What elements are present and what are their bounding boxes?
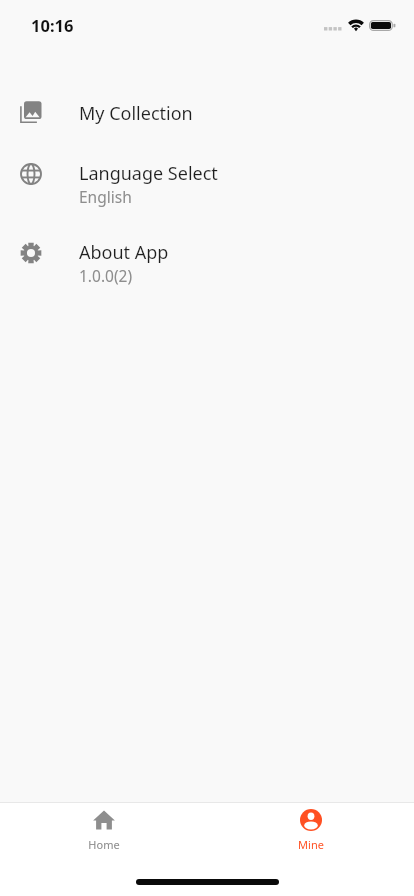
button[interactable]: About App — [0, 221, 414, 301]
button[interactable]: Home tab — [0, 803, 207, 855]
staticText: 10:16 — [31, 14, 74, 36]
button[interactable]: Mine tab — [207, 803, 414, 855]
button[interactable]: Language Select — [0, 142, 414, 221]
staticText: Mine — [298, 837, 324, 851]
staticText: Home — [88, 837, 120, 851]
button[interactable]: My Collection — [0, 82, 414, 142]
staticText: English — [79, 186, 132, 207]
staticText: My Collection — [79, 101, 193, 126]
staticText: About App — [79, 240, 169, 265]
staticText: 1.0.0(2) — [79, 265, 133, 286]
staticText: Language Select — [79, 161, 218, 186]
